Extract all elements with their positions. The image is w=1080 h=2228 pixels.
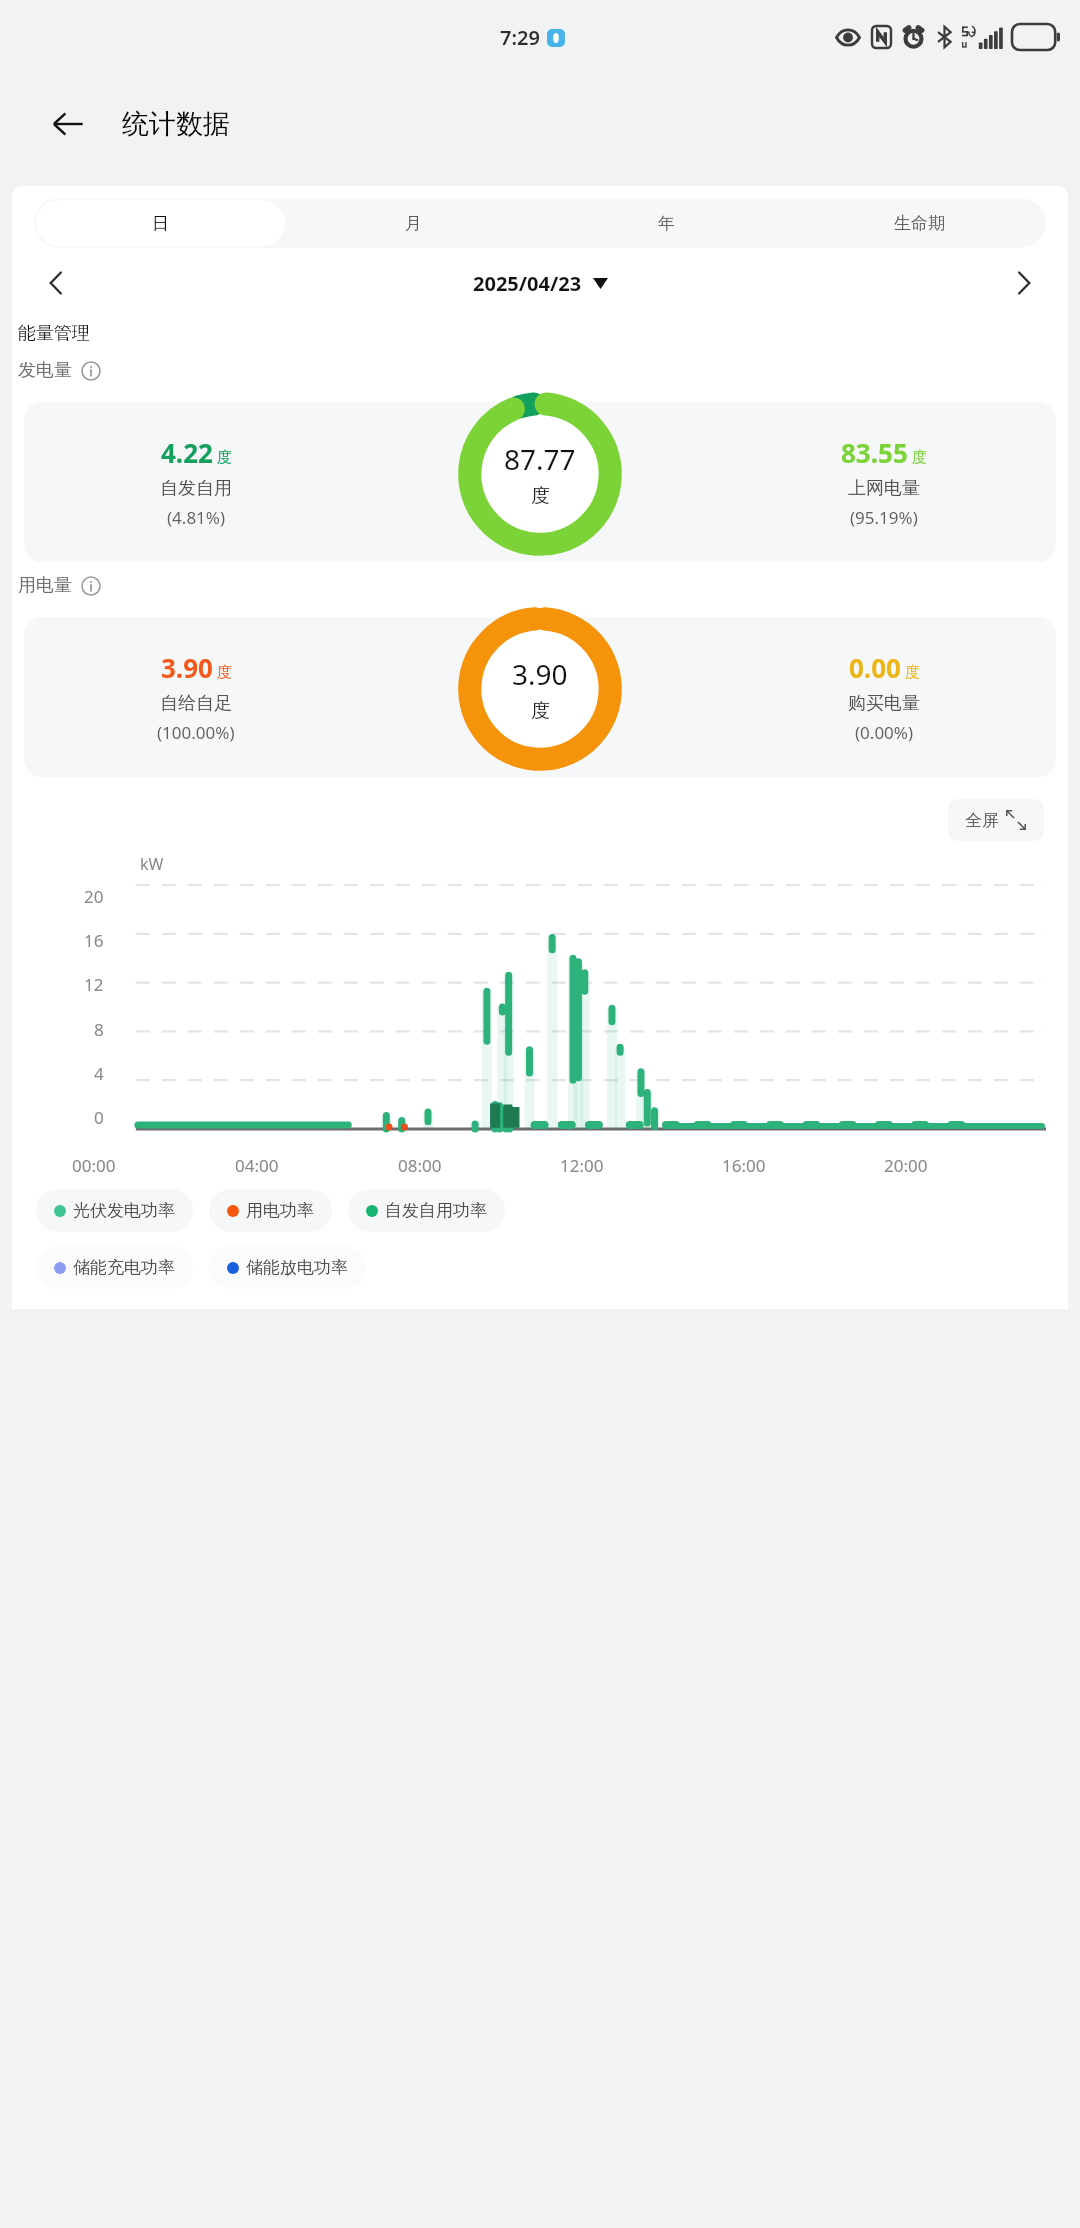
- button[interactable]: 年: [542, 200, 791, 246]
- staticText: 3.90: [161, 650, 213, 685]
- staticText: 日: [152, 213, 169, 234]
- staticText: 87.77: [504, 440, 576, 478]
- staticText: 光伏发电功率: [73, 1200, 175, 1221]
- staticText: 4.22: [161, 435, 213, 470]
- button[interactable]: 83.55: [712, 402, 1056, 562]
- staticText: 能量管理: [18, 322, 90, 345]
- staticText: 生命期: [894, 213, 945, 234]
- staticText: 8: [94, 1018, 104, 1041]
- staticText: 储能放电功率: [246, 1257, 348, 1278]
- staticText: 统计数据: [122, 107, 230, 141]
- staticText: 2025/04/23: [473, 270, 582, 297]
- staticText: 0.00: [849, 650, 901, 685]
- button[interactable]: 自发自用功率: [348, 1189, 505, 1232]
- button[interactable]: 光伏发电功率: [36, 1189, 193, 1232]
- button[interactable]: 月: [289, 200, 538, 246]
- button[interactable]: 储能放电功率: [209, 1246, 366, 1289]
- staticText: (4.81%): [167, 506, 226, 529]
- staticText: 04:00: [235, 1154, 279, 1177]
- staticText: 08:00: [398, 1154, 442, 1177]
- staticText: 20: [84, 885, 104, 908]
- staticText: (100.00%): [157, 721, 235, 744]
- staticText: 购买电量: [848, 692, 920, 715]
- staticText: 度: [217, 448, 232, 467]
- staticText: 度: [912, 448, 927, 467]
- button[interactable]: Previous day: [34, 261, 78, 305]
- button[interactable]: 3.90: [24, 617, 368, 777]
- button[interactable]: 4.22: [24, 402, 368, 562]
- staticText: 度: [217, 663, 232, 682]
- staticText: 00:00: [72, 1154, 116, 1177]
- staticText: 12:00: [560, 1154, 604, 1177]
- button[interactable]: Next day: [1002, 261, 1046, 305]
- staticText: 16: [84, 929, 104, 952]
- staticText: 度: [905, 663, 920, 682]
- staticText: 储能充电功率: [73, 1257, 175, 1278]
- button[interactable]: 0.00: [712, 617, 1056, 777]
- button[interactable]: Back: [40, 96, 96, 152]
- staticText: 度: [531, 484, 550, 508]
- staticText: 12: [84, 973, 104, 996]
- staticText: 用电量: [18, 574, 72, 597]
- button[interactable]: 全屏: [948, 799, 1044, 841]
- button[interactable]: 发电量: [18, 359, 101, 382]
- staticText: 83.55: [841, 435, 908, 470]
- button[interactable]: 日: [36, 200, 285, 246]
- staticText: 0: [94, 1106, 104, 1129]
- staticText: 自发自用功率: [385, 1200, 487, 1221]
- staticText: 20:00: [884, 1154, 928, 1177]
- staticText: 3.90: [512, 655, 568, 693]
- staticText: 4: [94, 1062, 104, 1085]
- staticText: (95.19%): [850, 506, 918, 529]
- staticText: 自发自用: [160, 477, 232, 500]
- staticText: 全屏: [965, 810, 999, 831]
- button[interactable]: 2025/04/23: [78, 254, 1002, 312]
- staticText: 发电量: [18, 359, 72, 382]
- button[interactable]: 生命期: [795, 200, 1044, 246]
- button[interactable]: 储能充电功率: [36, 1246, 193, 1289]
- staticText: kW: [140, 853, 164, 875]
- button[interactable]: 用电量: [18, 574, 101, 597]
- staticText: 月: [405, 213, 422, 234]
- staticText: 16:00: [722, 1154, 766, 1177]
- staticText: 年: [658, 213, 675, 234]
- staticText: 度: [531, 699, 550, 723]
- staticText: 自给自足: [160, 692, 232, 715]
- staticText: 7:29: [500, 24, 540, 51]
- staticText: 用电功率: [246, 1200, 314, 1221]
- staticText: (0.00%): [855, 721, 914, 744]
- button[interactable]: 用电功率: [209, 1189, 332, 1232]
- staticText: 上网电量: [848, 477, 920, 500]
